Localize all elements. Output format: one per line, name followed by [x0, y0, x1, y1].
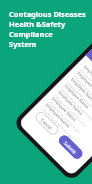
- staticText: Contagious Diseases: [9, 9, 86, 19]
- staticText: System: [9, 39, 37, 49]
- staticText: Employee Name: [69, 77, 92, 105]
- staticText: Health &Safety: [9, 19, 66, 29]
- staticText: Employee Name: [44, 102, 71, 130]
- staticText: Employee Name: [76, 71, 92, 98]
- staticText: Checked on arrival today: [42, 107, 76, 141]
- button[interactable]: Cancel: [33, 110, 61, 137]
- staticText: Employee Name: [50, 96, 78, 124]
- staticText: Checked on arrival today: [67, 81, 92, 115]
- staticText: Checked on arrival today: [48, 100, 82, 134]
- staticText: Checked on arrival today: [80, 69, 92, 102]
- staticText: Submit: [63, 140, 78, 156]
- button[interactable]: Submit: [56, 133, 85, 161]
- staticText: Cancel: [40, 117, 54, 131]
- staticText: Employee Name: [56, 90, 84, 117]
- staticText: Compliance: [9, 29, 53, 39]
- staticText: Employee Name: [63, 83, 90, 111]
- staticText: Checked on arrival today: [61, 88, 92, 121]
- staticText: Checked on arrival today: [54, 94, 88, 128]
- staticText: Checked on arrival today: [73, 75, 92, 109]
- staticText: Employee Name: [82, 64, 92, 92]
